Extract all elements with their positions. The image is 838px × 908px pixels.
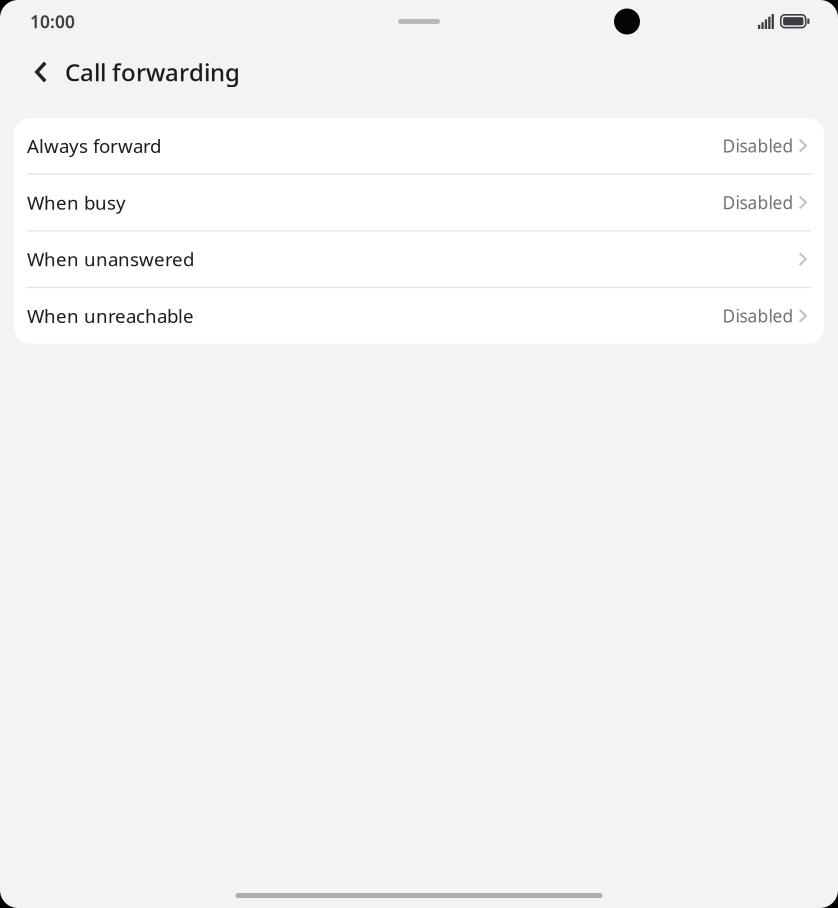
button[interactable]: When unanswered <box>14 231 824 287</box>
staticText: When unreachable <box>27 303 194 328</box>
staticText: Call forwarding <box>65 56 240 88</box>
button[interactable]: When unreachable <box>14 288 824 343</box>
staticText: 10:00 <box>30 10 75 33</box>
button[interactable]: Back <box>20 43 62 101</box>
staticText: Disabled <box>722 304 793 327</box>
staticText: Always forward <box>27 133 161 158</box>
staticText: Disabled <box>722 134 793 157</box>
staticText: When unanswered <box>27 247 194 271</box>
button[interactable]: When busy <box>14 175 824 230</box>
button[interactable]: Always forward <box>14 118 824 173</box>
staticText: Disabled <box>722 191 793 214</box>
staticText: When busy <box>27 190 126 215</box>
